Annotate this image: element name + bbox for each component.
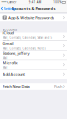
staticText: Accounts & Passwords: [11, 6, 55, 11]
staticText: Settings: [3, 6, 16, 11]
staticText: •••••: [1, 0, 6, 4]
staticText: ACCOUNTS: [3, 28, 17, 31]
staticText: Carrier: [7, 0, 16, 4]
button[interactable]: Fetch New Data: [0, 83, 67, 90]
button[interactable]: Microfix: [0, 60, 67, 69]
staticText: 100%: [53, 0, 61, 4]
staticText: Gmail: [3, 41, 14, 46]
staticText: 9:41 AM: [29, 0, 41, 4]
button[interactable]: Stations, jeffery: [0, 51, 67, 60]
staticText: Mail, Contacts, Calendars, Safari and 5 …: [3, 36, 53, 43]
button[interactable]: Settings: [0, 5, 16, 12]
staticText: Push: [54, 84, 62, 89]
staticText: iCloud: [3, 30, 14, 35]
staticText: App & Website Passwords: [8, 15, 54, 20]
button[interactable]: Add Account: [0, 69, 67, 79]
button[interactable]: Gmail: [0, 41, 67, 50]
staticText: Fetch New Data: [3, 84, 30, 89]
staticText: Add Account: [3, 72, 25, 77]
staticText: Mail: [3, 66, 8, 69]
staticText: Mail, Contacts, Calendars, Notes: [3, 47, 46, 50]
staticText: Mail: [3, 56, 8, 60]
staticText: Stations, jeffery: [3, 50, 30, 56]
staticText: Microfix: [3, 60, 18, 65]
button[interactable]: iCloud: [0, 32, 67, 40]
button[interactable]: App & Website Passwords: [0, 14, 67, 21]
